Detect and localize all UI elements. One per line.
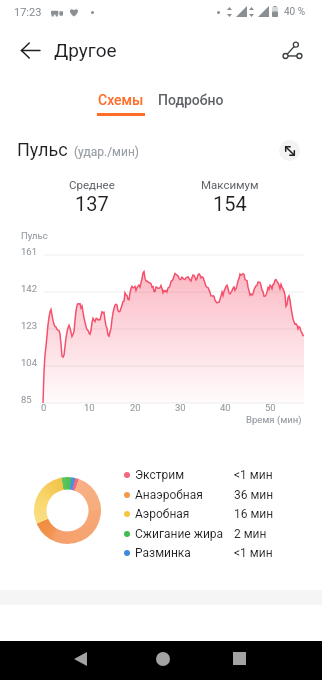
staticText: Сжигание жира (135, 527, 224, 541)
staticText: Схемы (98, 92, 144, 108)
staticText: Разминка (135, 546, 191, 560)
staticText: 40 % (284, 6, 306, 18)
staticText: 137 (75, 192, 109, 215)
button[interactable]: Аэробная (120, 504, 290, 523)
staticText: Экстрим (135, 468, 185, 482)
button[interactable]: Сжигание жира (120, 524, 290, 543)
staticText: Максимум (201, 178, 259, 191)
staticText: Анаэробная (135, 488, 203, 502)
staticText: <1 мин (234, 468, 273, 482)
staticText: (удар./мин) (74, 145, 140, 159)
staticText: Другое (54, 39, 117, 61)
staticText: 10 (84, 402, 95, 413)
button[interactable]: Разминка (120, 543, 290, 562)
staticText: 123 (21, 320, 38, 331)
staticText: 85 (21, 394, 32, 405)
button[interactable]: Back (6, 26, 54, 74)
button[interactable]: Подробно (152, 82, 230, 120)
staticText: 36 мин (234, 488, 274, 502)
staticText: Время (мин) (246, 414, 302, 425)
staticText: Подробно (158, 92, 224, 108)
staticText: 20 (130, 402, 141, 413)
staticText: 50 (265, 402, 276, 413)
staticText: 0 (41, 402, 47, 413)
staticText: 142 (21, 283, 38, 294)
staticText: 17:23 (14, 6, 42, 19)
button[interactable]: Back (60, 639, 100, 678)
button[interactable]: Анаэробная (120, 485, 290, 504)
staticText: Аэробная (135, 507, 190, 521)
button[interactable]: Схемы (90, 82, 151, 120)
staticText: 154 (213, 192, 247, 215)
button[interactable]: Share (268, 26, 316, 74)
staticText: Пульс (21, 230, 48, 241)
button[interactable]: Home (143, 639, 183, 678)
staticText: 161 (21, 246, 38, 257)
staticText: 40 (220, 402, 231, 413)
staticText: Пульс (17, 139, 68, 160)
staticText: 16 мин (234, 507, 274, 521)
button[interactable]: Recents (219, 639, 259, 678)
staticText: Среднее (69, 178, 115, 191)
staticText: <1 мин (234, 546, 273, 560)
staticText: 2 мин (234, 527, 267, 541)
staticText: 104 (21, 357, 38, 368)
button[interactable]: Экстрим (120, 465, 290, 484)
staticText: 30 (175, 402, 186, 413)
button[interactable]: Expand (279, 140, 300, 161)
